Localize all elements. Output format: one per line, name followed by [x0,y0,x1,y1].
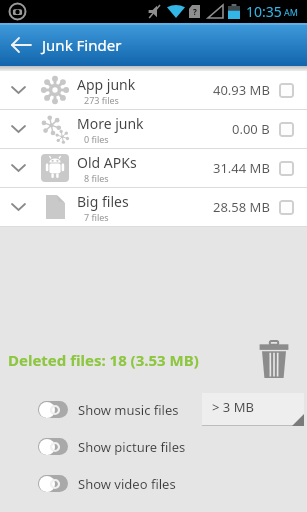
button[interactable]: Old APKs [0,149,307,187]
button[interactable]: Big files [0,188,307,226]
button[interactable] [38,438,68,455]
staticText: 31.44 MB [213,159,270,177]
button[interactable] [38,475,68,492]
button[interactable] [259,341,289,378]
button[interactable] [279,200,294,215]
staticText: Old APKs [77,153,137,172]
staticText: 10:35 [246,2,282,21]
staticText: 273 files [84,94,119,106]
staticText: 0 files [84,133,109,145]
staticText: AM [284,6,298,18]
staticText: ? [193,6,197,17]
button[interactable]: More junk [0,110,307,148]
staticText: 7 files [84,211,109,223]
staticText: > 3 MB [212,398,254,416]
staticText: App junk [77,75,136,94]
staticText: More junk [77,114,144,133]
button[interactable] [279,83,294,98]
staticText: 8 files [84,172,109,184]
staticText: 0.00 B [232,120,270,138]
staticText: Show music files [78,401,202,419]
button[interactable] [38,401,68,418]
button[interactable]: Junk Finder [0,23,307,66]
staticText: Deleted files: 18 (3.53 MB) [8,350,259,370]
staticText: 40.93 MB [213,81,270,99]
button[interactable] [279,122,294,137]
staticText: Show video files [78,475,176,493]
staticText: Big files [77,192,129,211]
staticText: 28.58 MB [213,198,270,216]
staticText: Show picture files [78,438,186,456]
button[interactable]: > 3 MB [202,393,304,426]
button[interactable]: App junk [0,71,307,109]
button[interactable] [279,161,294,176]
staticText: Junk Finder [42,35,122,55]
